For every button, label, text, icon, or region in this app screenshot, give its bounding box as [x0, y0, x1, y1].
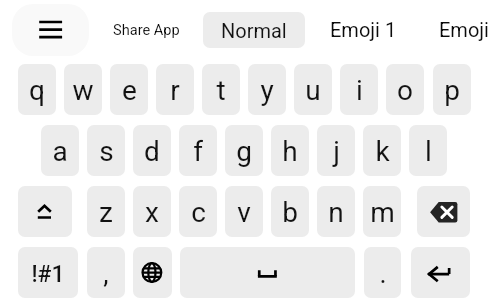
button[interactable]: g [225, 125, 263, 176]
button[interactable]: Backspace [417, 186, 470, 237]
staticText: s [99, 135, 114, 168]
button[interactable]: . [364, 247, 401, 298]
button[interactable]: l [409, 125, 447, 176]
staticText: Emoji 2 [439, 18, 488, 41]
button[interactable]: r [156, 64, 194, 115]
staticText: m [370, 196, 395, 229]
button[interactable]: u [294, 64, 332, 115]
button[interactable]: q [18, 64, 56, 115]
button[interactable]: Space [180, 247, 355, 298]
button[interactable]: d [133, 125, 171, 176]
staticText: n [328, 196, 344, 229]
button[interactable]: Emoji 2 [419, 4, 488, 55]
staticText: l [425, 135, 432, 168]
staticText: i [356, 74, 363, 107]
button[interactable]: k [363, 125, 401, 176]
staticText: r [170, 74, 180, 107]
button[interactable]: i [340, 64, 378, 115]
button[interactable]: !#1 [18, 247, 78, 298]
staticText: k [375, 135, 390, 168]
button[interactable]: Enter [411, 247, 470, 298]
staticText: b [282, 196, 298, 229]
staticText: Emoji 1 [330, 18, 397, 41]
button[interactable]: h [271, 125, 309, 176]
button[interactable]: Emoji 1 [310, 4, 417, 55]
button[interactable]: , [87, 247, 125, 298]
staticText: a [52, 135, 68, 168]
button[interactable]: s [87, 125, 125, 176]
staticText: p [444, 74, 460, 107]
button[interactable]: Normal [203, 12, 305, 48]
button[interactable]: Menu [12, 4, 89, 56]
staticText: g [236, 135, 252, 168]
staticText: x [145, 196, 159, 229]
staticText: d [144, 135, 160, 168]
staticText: j [333, 135, 340, 168]
staticText: Share App [113, 21, 180, 38]
staticText: u [305, 74, 321, 107]
button[interactable]: o [386, 64, 424, 115]
button[interactable]: x [133, 186, 171, 237]
staticText: Normal [221, 19, 287, 42]
staticText: h [282, 135, 298, 168]
button[interactable]: c [179, 186, 217, 237]
button[interactable]: a [41, 125, 79, 176]
button[interactable]: b [271, 186, 309, 237]
button[interactable]: t [202, 64, 240, 115]
staticText: , [103, 258, 109, 290]
staticText: y [260, 74, 274, 107]
button[interactable]: Share App [93, 4, 200, 55]
button[interactable]: m [363, 186, 401, 237]
button[interactable]: p [433, 64, 471, 115]
button[interactable]: n [317, 186, 355, 237]
button[interactable]: j [317, 125, 355, 176]
staticText: z [99, 196, 113, 229]
staticText: c [191, 196, 206, 229]
button[interactable]: w [64, 64, 102, 115]
staticText: e [122, 74, 137, 107]
staticText: o [397, 74, 413, 107]
staticText: q [29, 74, 45, 107]
staticText: v [237, 196, 251, 229]
button[interactable]: z [87, 186, 125, 237]
staticText: w [72, 74, 94, 107]
button[interactable]: e [110, 64, 148, 115]
button[interactable]: Switch language [133, 247, 172, 298]
button[interactable]: Shift [18, 186, 72, 237]
button[interactable]: y [248, 64, 286, 115]
button[interactable]: v [225, 186, 263, 237]
button[interactable]: f [179, 125, 217, 176]
staticText: f [193, 135, 203, 168]
staticText: !#1 [31, 261, 65, 288]
staticText: t [216, 74, 226, 107]
staticText: . [379, 258, 387, 290]
